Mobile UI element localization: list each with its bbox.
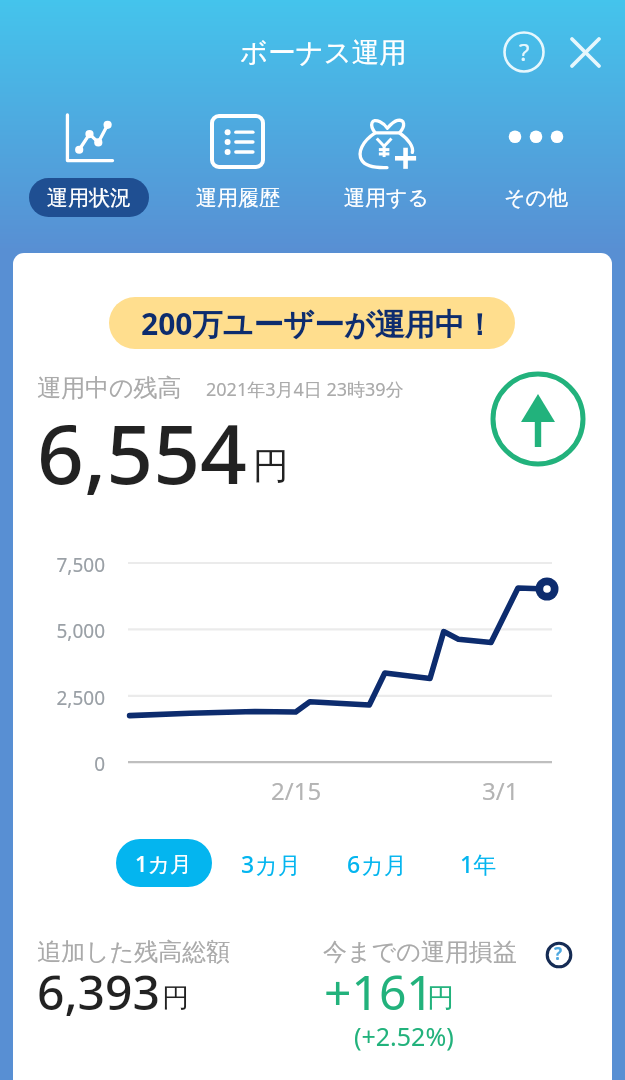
staticText: ボーナス運用	[240, 36, 407, 71]
staticText: 3カ月	[241, 848, 301, 879]
button[interactable]: 運用する	[312, 107, 461, 217]
staticText: 2021年3月4日 23時39分	[206, 377, 404, 402]
staticText: 1カ月	[135, 848, 193, 878]
button[interactable]: 1カ月	[116, 839, 212, 887]
staticText: 1年	[460, 848, 497, 879]
button[interactable]: 1年	[445, 839, 511, 887]
button[interactable]: Balance increased	[488, 369, 588, 469]
staticText: 2,500	[35, 685, 105, 711]
staticText: 0	[35, 751, 105, 777]
staticText: 7,500	[35, 552, 105, 578]
staticText: 200万ユーザーが運用中！	[141, 303, 495, 344]
staticText: 円	[162, 981, 189, 1015]
staticText: 6カ月	[347, 848, 407, 879]
button[interactable]: 運用状況	[14, 107, 163, 217]
button[interactable]: Close	[561, 28, 609, 76]
staticText: 今までの運用損益	[323, 937, 517, 967]
staticText: 5,000	[35, 618, 105, 644]
button[interactable]: Help	[500, 28, 548, 76]
staticText: 3/1	[482, 774, 519, 807]
button[interactable]: 3カ月	[238, 839, 304, 887]
button[interactable]: 運用履歴	[163, 107, 312, 217]
button[interactable]: 6カ月	[344, 839, 410, 887]
staticText: 運用中の残高	[37, 373, 182, 403]
staticText: +161	[324, 959, 434, 1024]
staticText: ?	[554, 942, 563, 965]
staticText: 6,393	[37, 959, 160, 1024]
staticText: 6,554	[37, 396, 248, 508]
staticText: 運用状況	[47, 185, 131, 211]
button[interactable]: その他	[461, 107, 610, 217]
button[interactable]: 200万ユーザーが運用中！	[109, 297, 515, 349]
staticText: 2/15	[271, 774, 322, 807]
button[interactable]: About profit	[542, 938, 575, 971]
staticText: 円	[253, 443, 289, 488]
staticText: 円	[427, 981, 454, 1015]
staticText: 追加した残高総額	[37, 937, 231, 967]
staticText: (+2.52%)	[354, 1019, 454, 1053]
staticText: ?	[519, 35, 530, 68]
staticText: 運用する	[344, 185, 429, 211]
staticText: 運用履歴	[196, 185, 280, 211]
staticText: その他	[504, 185, 568, 211]
